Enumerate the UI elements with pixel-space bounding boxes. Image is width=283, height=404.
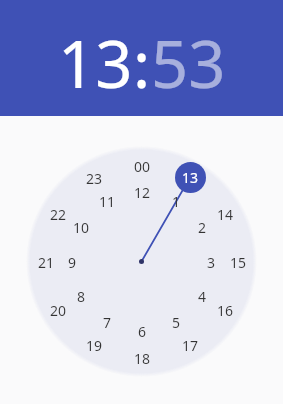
button[interactable]: 53 xyxy=(151,19,226,108)
staticText: 20 xyxy=(50,301,67,319)
staticText: 17 xyxy=(182,336,199,354)
staticText: 53 xyxy=(151,19,226,108)
staticText: 12 xyxy=(134,183,151,201)
button[interactable]: 22 xyxy=(43,205,73,223)
staticText: 9 xyxy=(68,253,77,271)
staticText: 6 xyxy=(138,322,147,340)
button[interactable]: 14 xyxy=(210,205,240,223)
button[interactable]: 15 xyxy=(223,253,253,271)
button[interactable]: 23 xyxy=(79,169,109,187)
button[interactable]: 5 xyxy=(161,313,191,331)
button[interactable]: 2 xyxy=(187,218,217,236)
button[interactable]: 4 xyxy=(187,287,217,305)
button[interactable]: 6 xyxy=(127,322,157,340)
staticText: 4 xyxy=(198,287,207,305)
staticText: 8 xyxy=(77,287,86,305)
button[interactable]: 00 xyxy=(127,157,157,175)
staticText: 23 xyxy=(86,169,103,187)
button[interactable]: 12 xyxy=(127,183,157,201)
staticText: 13 xyxy=(58,19,133,108)
button[interactable]: 9 xyxy=(57,253,87,271)
button[interactable]: 8 xyxy=(66,287,96,305)
staticText: 1 xyxy=(172,192,181,210)
button[interactable]: 20 xyxy=(43,301,73,319)
staticText: 5 xyxy=(172,313,181,331)
staticText: 10 xyxy=(73,218,90,236)
staticText: : xyxy=(133,20,151,107)
button[interactable] xyxy=(28,148,256,376)
staticText: 15 xyxy=(230,253,247,271)
staticText: 7 xyxy=(103,313,112,331)
button[interactable]: 11 xyxy=(92,192,122,210)
staticText: 18 xyxy=(134,349,151,367)
button[interactable]: 17 xyxy=(175,336,205,354)
staticText: 16 xyxy=(217,301,234,319)
button[interactable]: 21 xyxy=(31,253,61,271)
button[interactable]: 1 xyxy=(161,192,191,210)
staticText: 22 xyxy=(50,205,67,223)
button[interactable]: 13 xyxy=(58,19,133,108)
button[interactable]: 16 xyxy=(210,301,240,319)
button[interactable]: 19 xyxy=(79,336,109,354)
staticText: 3 xyxy=(207,253,216,271)
staticText: 19 xyxy=(86,336,103,354)
staticText: 11 xyxy=(99,192,116,210)
button[interactable]: 3 xyxy=(196,253,226,271)
button[interactable]: 10 xyxy=(66,218,96,236)
button[interactable]: 7 xyxy=(92,313,122,331)
staticText: 13 xyxy=(182,168,199,187)
button[interactable]: 18 xyxy=(127,349,157,367)
staticText: 21 xyxy=(38,253,55,271)
staticText: 14 xyxy=(217,205,234,223)
staticText: 00 xyxy=(134,157,151,175)
button[interactable]: 13 xyxy=(175,162,206,193)
staticText: 2 xyxy=(198,218,207,236)
